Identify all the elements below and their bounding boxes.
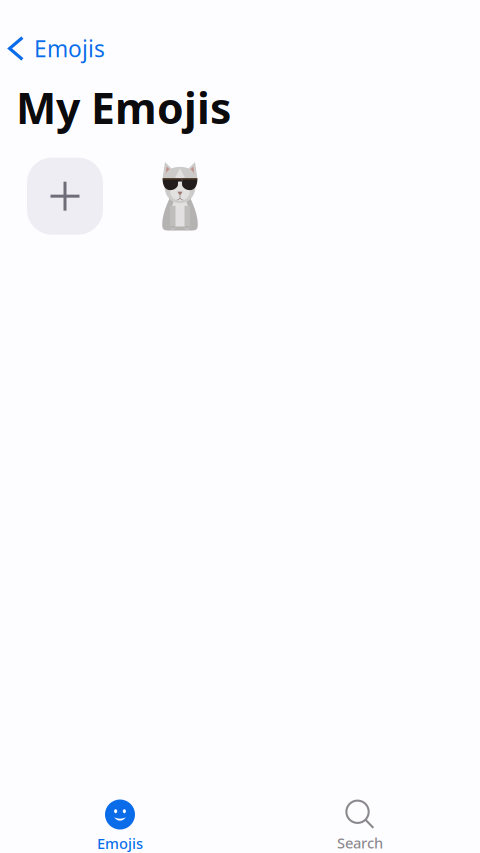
button[interactable]: Cat Memoji: [142, 158, 218, 235]
staticText: Search: [337, 833, 383, 852]
staticText: Emojis: [34, 33, 105, 63]
button[interactable]: Add Emoji: [27, 158, 103, 235]
staticText: Emojis: [97, 833, 143, 853]
button[interactable]: Emojis: [0, 28, 117, 68]
button[interactable]: Search: [240, 800, 480, 852]
button[interactable]: Emojis: [0, 799, 240, 853]
staticText: My Emojis: [16, 79, 231, 136]
